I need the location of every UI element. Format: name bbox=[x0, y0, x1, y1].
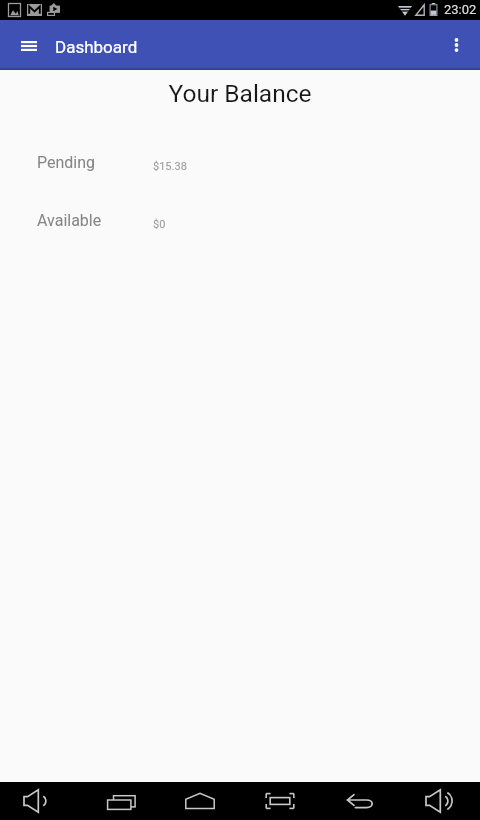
staticText: $15.38 bbox=[153, 160, 187, 173]
button[interactable]: Back bbox=[328, 782, 392, 820]
staticText: Available bbox=[37, 211, 102, 230]
button[interactable]: More options bbox=[434, 20, 478, 70]
staticText: 23:02 bbox=[444, 2, 477, 17]
staticText: Dashboard bbox=[55, 37, 138, 57]
button[interactable]: Home bbox=[168, 782, 232, 820]
button[interactable]: Available bbox=[0, 211, 480, 235]
button[interactable]: Pending bbox=[0, 153, 480, 177]
button[interactable]: Volume up bbox=[407, 782, 471, 820]
button[interactable]: Open navigation drawer bbox=[5, 20, 53, 70]
button[interactable]: Recent apps bbox=[89, 782, 153, 820]
button[interactable]: Volume down bbox=[5, 782, 69, 820]
staticText: Your Balance bbox=[0, 79, 480, 108]
staticText: Pending bbox=[37, 153, 96, 172]
button[interactable]: Screenshot bbox=[248, 782, 312, 820]
staticText: $0 bbox=[153, 218, 166, 231]
